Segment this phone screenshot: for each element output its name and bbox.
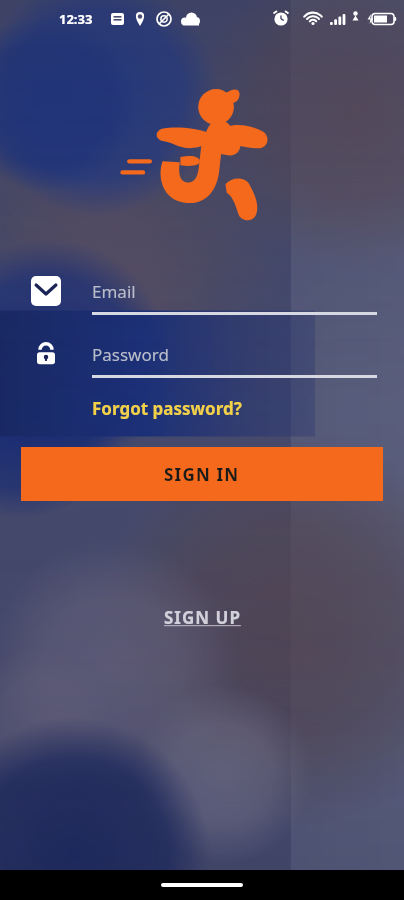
button[interactable]: SIGN IN bbox=[21, 447, 383, 501]
button[interactable]: SIGN UP bbox=[154, 601, 251, 634]
staticText: SIGN UP bbox=[164, 606, 241, 629]
staticText: Email bbox=[92, 280, 136, 303]
staticText: Password bbox=[92, 343, 169, 366]
staticText: 12:33 bbox=[59, 10, 93, 28]
button[interactable]: Forgot password? bbox=[92, 394, 242, 423]
staticText: SIGN IN bbox=[164, 463, 240, 486]
other: Home bbox=[161, 883, 243, 887]
staticText: Forgot password? bbox=[92, 397, 242, 420]
